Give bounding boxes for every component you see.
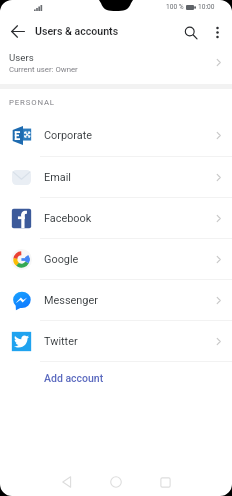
- button[interactable]: More options: [203, 18, 231, 46]
- button[interactable]: Google: [0, 239, 232, 279]
- staticText: Email: [44, 171, 71, 184]
- staticText: Users & accounts: [35, 25, 119, 37]
- staticText: 10:00: [198, 3, 215, 11]
- button[interactable]: Messenger: [0, 280, 232, 320]
- button[interactable]: Users: [0, 41, 232, 84]
- staticText: Google: [44, 253, 79, 266]
- staticText: Add account: [44, 372, 104, 384]
- button[interactable]: Email: [0, 157, 232, 197]
- button[interactable]: Back: [50, 465, 84, 496]
- staticText: Messenger: [44, 294, 98, 307]
- staticText: Users: [9, 52, 34, 63]
- staticText: Corporate: [44, 129, 93, 142]
- button[interactable]: Home: [99, 465, 133, 496]
- button[interactable]: Corporate: [0, 115, 232, 156]
- button[interactable]: Navigate up: [4, 17, 32, 45]
- staticText: Facebook: [44, 212, 92, 225]
- staticText: PERSONAL: [9, 98, 55, 107]
- button[interactable]: Search: [177, 19, 205, 47]
- button[interactable]: Add account: [0, 362, 232, 394]
- staticText: 100 %: [166, 3, 184, 11]
- button[interactable]: Recent apps: [148, 465, 182, 496]
- button[interactable]: Twitter: [0, 321, 232, 361]
- staticText: Twitter: [44, 335, 78, 348]
- staticText: Current user: Owner: [9, 65, 78, 74]
- button[interactable]: Facebook: [0, 198, 232, 238]
